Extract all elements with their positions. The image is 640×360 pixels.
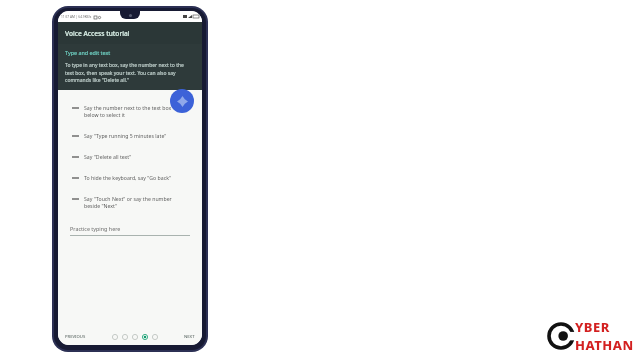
button[interactable]: Voice Access — [170, 89, 194, 113]
button[interactable]: NEXT — [182, 332, 197, 342]
staticText: PREVIOUS — [65, 334, 86, 340]
button[interactable]: Say "Delete all text" — [66, 148, 194, 165]
staticText: Say the number next to the text box belo… — [84, 104, 186, 118]
staticText: Say "Type running 5 minutes late" — [84, 132, 167, 139]
staticText: Practice typing here — [70, 225, 121, 232]
button[interactable]: Voice Access tutorial — [58, 22, 202, 44]
staticText: Say "Delete all text" — [84, 153, 132, 160]
staticText: 11:57 AM | 64.9KB/s — [61, 15, 92, 19]
staticText: Say "Touch Next" or say the number besid… — [84, 195, 186, 209]
staticText: YBER — [575, 318, 610, 336]
button[interactable]: To hide the keyboard, say "Go back" — [66, 169, 194, 186]
staticText: Type and edit text — [65, 49, 111, 56]
staticText: To hide the keyboard, say "Go back" — [84, 174, 172, 181]
staticText: To type in any text box, say the number … — [65, 62, 193, 83]
button[interactable]: Say the number next to the text box belo… — [66, 99, 194, 123]
button[interactable]: PREVIOUS — [63, 332, 88, 342]
button[interactable]: Say "Type running 5 minutes late" — [66, 127, 194, 144]
button[interactable]: Say "Touch Next" or say the number besid… — [66, 190, 194, 214]
staticText: HATHAN — [575, 336, 634, 354]
staticText: NEXT — [184, 334, 195, 340]
staticText: Voice Access tutorial — [65, 29, 130, 38]
button[interactable]: Practice typing here — [70, 225, 190, 236]
